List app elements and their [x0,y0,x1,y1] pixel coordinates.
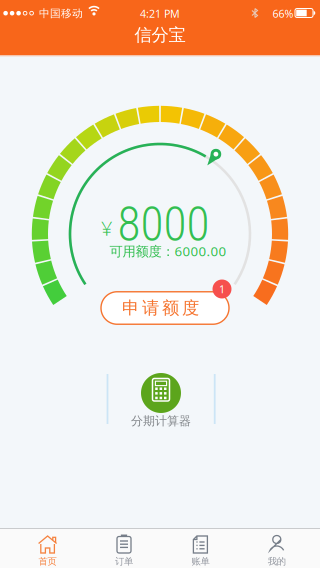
button[interactable]: 订单 [86,529,162,568]
staticText: 首页 [39,556,57,567]
staticText: ¥ [101,214,112,242]
staticText: 8000 [117,196,209,252]
button[interactable]: 首页 [9,529,86,568]
staticText: 订单 [115,556,133,567]
staticText: 我的 [268,556,286,567]
staticText: 1 [219,282,225,296]
button[interactable]: 申请额度 [100,291,230,325]
staticText: 账单 [191,556,209,567]
button[interactable]: 账单 [162,529,239,568]
staticText: 申请额度 [122,297,199,319]
button[interactable]: 分期计算器 [131,371,191,427]
staticText: 66% [272,6,293,21]
staticText: 中国移动 [39,7,83,20]
staticText: 可用额度：6000.00 [109,242,226,260]
staticText: 分期计算器 [131,414,191,428]
button[interactable]: 我的 [239,529,315,568]
staticText: 信分宝 [134,24,185,46]
staticText: 4:21 PM [140,6,180,21]
